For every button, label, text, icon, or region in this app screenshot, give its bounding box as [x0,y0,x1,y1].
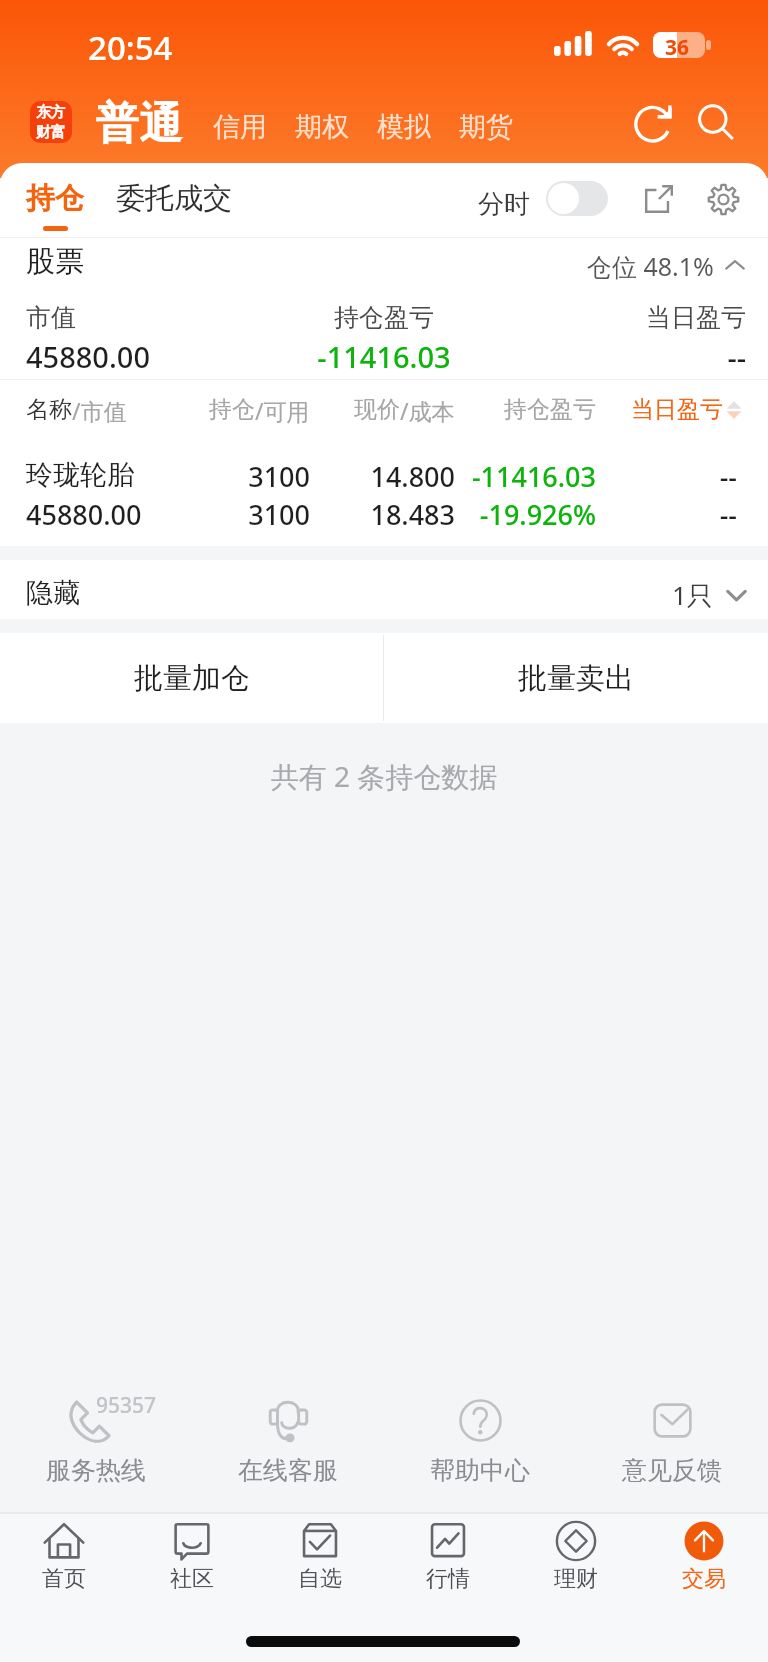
button[interactable]: 批量加仓 [0,633,383,723]
button[interactable]: Search [688,95,744,151]
staticText: -- [0,458,737,495]
staticText: 持仓盈亏 [504,395,596,424]
button[interactable]: 行情 [384,1514,512,1662]
staticText: 仓位 48.1% [587,249,714,283]
staticText: 45880.00 [26,496,142,533]
button[interactable]: 当日盈亏 [631,395,742,424]
staticText: /成本 [400,395,455,426]
button[interactable]: 批量卖出 [384,633,768,723]
button[interactable]: 交易 [640,1514,768,1662]
button[interactable]: 信用 [208,110,272,144]
staticText: 隐藏 [26,576,80,610]
staticText: /可用 [255,395,310,426]
staticText: -11416.03 [0,458,596,495]
button[interactable]: 在线客服 [192,1377,384,1497]
staticText: 委托成交 [116,180,232,217]
button[interactable]: 意见反馈 [576,1377,768,1497]
button[interactable]: East Money [30,101,72,143]
button[interactable]: 期货 [454,110,518,144]
staticText: 3100 [0,496,310,533]
staticText: -11416.03 [0,337,768,376]
button[interactable]: Open in new [634,174,684,224]
staticText: /市值 [72,395,127,426]
button[interactable]: 自选 [256,1514,384,1662]
staticText: 玲珑轮胎 [26,458,134,492]
button[interactable]: 仓位 48.1% [587,249,746,283]
staticText: -- [0,496,737,533]
staticText: 持仓盈亏 [0,302,768,333]
staticText: 批量卖出 [518,660,634,697]
staticText: 帮助中心 [384,1455,576,1486]
staticText: 14.800 [0,458,455,495]
button[interactable]: 持仓 [26,180,84,231]
staticText: 在线客服 [192,1455,384,1486]
staticText: 共有 2 条持仓数据 [0,757,768,795]
button[interactable]: 帮助中心 [384,1377,576,1497]
staticText: 股票 [26,243,84,280]
staticText: 名称 [26,395,72,424]
staticText: 财富 [36,123,66,142]
staticText: -- [0,337,746,376]
staticText: 意见反馈 [576,1455,768,1486]
button[interactable]: 理财 [512,1514,640,1662]
staticText: 1只 [672,577,713,613]
staticText: 36 [651,33,703,59]
staticText: 服务热线 [0,1455,192,1486]
staticText: 社区 [128,1565,256,1593]
staticText: 首页 [0,1565,128,1593]
button[interactable]: 委托成交 [116,180,232,217]
staticText: 期货 [459,110,513,144]
staticText: 期权 [295,110,349,144]
button[interactable]: 模拟 [372,110,436,144]
button[interactable]: 普通 [95,97,183,151]
button[interactable]: 隐藏 [0,560,768,619]
button[interactable]: 95357 [0,1377,192,1497]
button[interactable]: 期权 [290,110,354,144]
staticText: -19.926% [0,496,596,533]
staticText: 18.483 [0,496,455,533]
staticText: 持仓 [26,180,84,217]
staticText: 信用 [213,110,267,144]
staticText: 交易 [640,1565,768,1593]
staticText: 市值 [26,302,76,333]
staticText: 理财 [512,1565,640,1593]
button[interactable]: 首页 [0,1514,128,1662]
staticText: 行情 [384,1565,512,1593]
staticText: 当日盈亏 [0,302,746,333]
staticText: 当日盈亏 [631,395,723,424]
button[interactable]: 社区 [128,1514,256,1662]
staticText: 普通 [95,97,183,151]
staticText: 持仓 [209,395,255,424]
button[interactable]: Refresh [627,95,683,151]
button[interactable]: Intraday toggle [546,181,608,216]
staticText: 95357 [96,1391,157,1420]
staticText: 分时 [478,188,530,221]
staticText: 20:54 [88,25,173,70]
staticText: 批量加仓 [134,660,250,697]
staticText: 45880.00 [26,337,151,376]
staticText: 自选 [256,1565,384,1593]
button[interactable]: 玲珑轮胎 [0,447,768,537]
staticText: 3100 [0,458,310,495]
staticText: 现价 [354,395,400,424]
button[interactable]: Settings [698,174,748,224]
staticText: 东方 [36,103,66,122]
staticText: 模拟 [377,110,431,144]
